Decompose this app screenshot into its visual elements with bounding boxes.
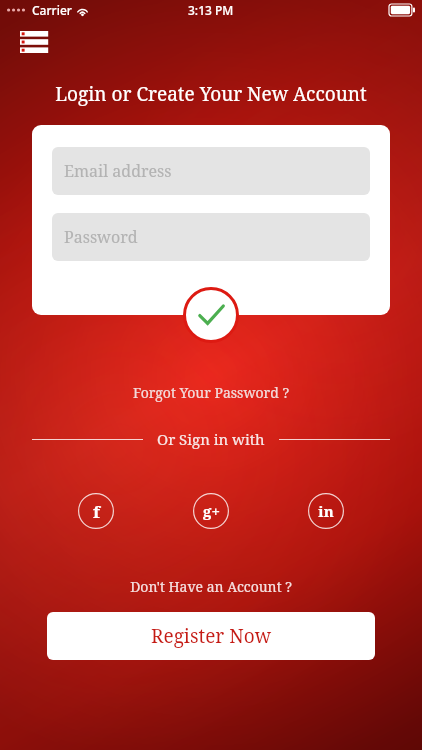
button[interactable]: Submit xyxy=(183,287,239,343)
staticText: 3:13 PM xyxy=(188,2,234,18)
staticText: Don't Have an Account ? xyxy=(0,577,422,596)
button[interactable]: Password xyxy=(52,213,370,261)
staticText: Register Now xyxy=(151,623,272,649)
staticText: Carrier xyxy=(32,2,72,18)
staticText: Login or Create Your New Account xyxy=(0,81,422,107)
button[interactable]: Forgot Your Password ? xyxy=(0,383,422,402)
staticText: g+ xyxy=(203,501,220,521)
button[interactable]: Sign in with Facebook xyxy=(78,493,114,529)
staticText: in xyxy=(318,501,334,521)
staticText: Email address xyxy=(64,160,172,182)
staticText: Password xyxy=(64,226,138,248)
staticText: f xyxy=(93,500,100,523)
button[interactable]: Register Now xyxy=(47,612,375,660)
button[interactable]: Menu xyxy=(20,31,50,53)
button[interactable]: Sign in with LinkedIn xyxy=(308,493,344,529)
button[interactable]: Sign in with Google xyxy=(193,493,229,529)
staticText: Or Sign in with xyxy=(157,429,265,449)
button[interactable]: Email address xyxy=(52,147,370,195)
